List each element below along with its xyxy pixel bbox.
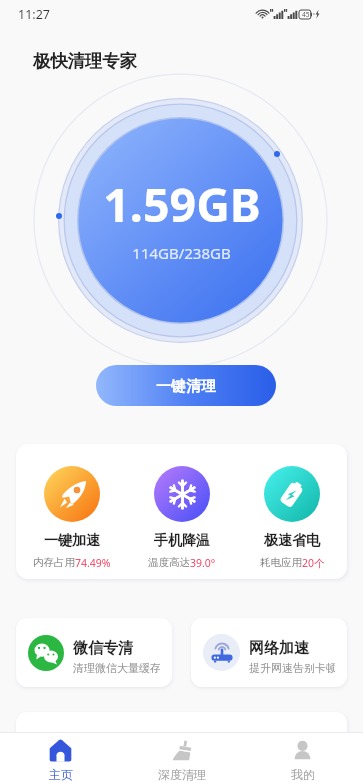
button[interactable]: 微信专清 (16, 618, 172, 687)
staticText: 微信专清 (73, 639, 133, 658)
button[interactable] (16, 712, 347, 772)
staticText: 39.0° (190, 556, 216, 570)
button[interactable]: 一键清理 (96, 365, 276, 406)
staticText: 1.59GB (103, 172, 261, 235)
staticText: 74.49% (75, 556, 111, 570)
staticText: 11:27 (18, 6, 50, 23)
staticText: 20个 (302, 556, 325, 570)
staticText: 极快清理专家 (33, 50, 137, 72)
button[interactable]: 一键加速 (16, 466, 127, 570)
staticText: 手机降温 (154, 532, 210, 550)
button[interactable]: 深度清理 (121, 739, 242, 782)
staticText: 主页 (49, 767, 73, 782)
button[interactable]: 主页 (0, 739, 121, 782)
staticText: 45 (302, 10, 310, 19)
button[interactable]: 网络加速 (191, 618, 347, 687)
button[interactable]: 极速省电 (237, 466, 347, 570)
staticText: 极速省电 (264, 532, 320, 550)
staticText: 提升网速告别卡顿 (249, 661, 335, 675)
staticText: 网络加速 (249, 639, 309, 658)
staticText: 114GB/238GB (132, 243, 231, 263)
staticText: 深度清理 (158, 767, 206, 782)
staticText: 清理微信大量缓存 (73, 661, 160, 675)
staticText: 一键加速 (44, 532, 100, 550)
staticText: 耗电应用 (260, 556, 302, 569)
button[interactable]: 手机降温 (127, 466, 237, 570)
staticText: 温度高达 (148, 556, 190, 569)
staticText: 内存占用 (33, 556, 75, 569)
button[interactable]: 我的 (242, 739, 363, 782)
staticText: 我的 (291, 767, 315, 782)
staticText: 一键清理 (156, 377, 217, 395)
